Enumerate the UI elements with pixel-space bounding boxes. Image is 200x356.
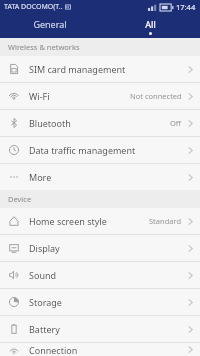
button[interactable]: General — [0, 14, 100, 38]
button[interactable]: All — [100, 14, 200, 38]
staticText: Standard — [149, 216, 182, 226]
button[interactable]: SIM card management — [0, 56, 200, 82]
staticText: All — [145, 18, 156, 30]
staticText: Wireless & networks — [8, 42, 80, 52]
staticText: Connection — [29, 344, 78, 356]
staticText: TATA DOCOMO(T.. — [4, 2, 63, 12]
staticText: Data traffic management — [29, 144, 136, 156]
staticText: Display — [29, 242, 60, 254]
staticText: Storage — [29, 296, 62, 308]
button[interactable]: Sound — [0, 262, 200, 288]
button[interactable]: Connection — [0, 343, 200, 356]
button[interactable]: Wi-Fi — [0, 83, 200, 109]
staticText: More — [29, 171, 52, 183]
staticText: Bluetooth — [29, 117, 71, 129]
staticText: Off — [170, 118, 182, 128]
button[interactable]: Home screen style — [0, 208, 200, 234]
staticText: SIM card management — [29, 63, 126, 75]
staticText: Home screen style — [29, 215, 107, 227]
staticText: Wi-Fi — [29, 90, 50, 102]
button[interactable]: Data traffic management — [0, 137, 200, 163]
button[interactable]: Bluetooth — [0, 110, 200, 136]
staticText: General — [33, 18, 67, 30]
staticText: Device — [8, 194, 32, 204]
staticText: Not connected — [130, 91, 182, 101]
staticText: Battery — [29, 323, 60, 335]
staticText: 17:44 — [176, 2, 196, 12]
button[interactable]: Storage — [0, 289, 200, 315]
button[interactable]: More — [0, 164, 200, 190]
button[interactable]: Display — [0, 235, 200, 261]
button[interactable]: Battery — [0, 316, 200, 342]
staticText: Sound — [29, 269, 57, 281]
